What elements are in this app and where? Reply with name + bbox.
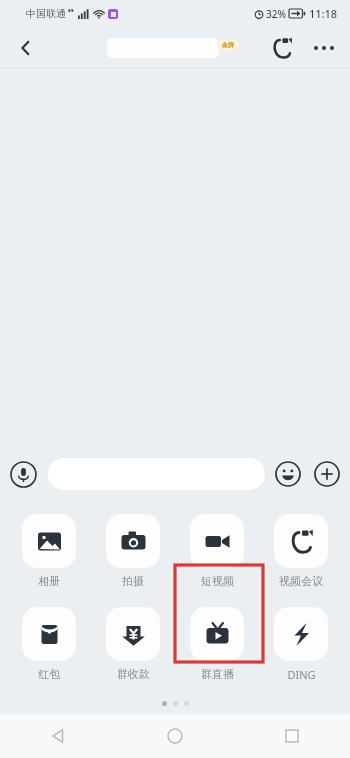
button[interactable]: Recents (233, 714, 350, 758)
staticText: 群收款 (117, 667, 150, 681)
staticText: 32% (266, 7, 286, 21)
button[interactable] (48, 458, 265, 490)
staticText: 11:18 (309, 6, 338, 21)
button[interactable]: Home (116, 714, 233, 758)
button[interactable]: Back (0, 714, 116, 758)
button[interactable]: 群直播 (186, 607, 248, 681)
button[interactable]: More options (306, 30, 342, 66)
staticText: 短视频 (201, 574, 234, 588)
staticText: 相册 (38, 574, 60, 588)
button[interactable]: Emoji (275, 461, 301, 487)
button[interactable]: 相册 (18, 514, 80, 588)
staticText: 红包 (38, 667, 60, 681)
staticText: DING (287, 667, 316, 682)
button[interactable]: Video call (264, 30, 300, 66)
button[interactable]: Voice message (10, 461, 37, 488)
staticText: 拍摄 (122, 574, 144, 588)
staticText: 金牌 (222, 41, 234, 49)
button[interactable]: 群收款 (102, 607, 164, 681)
button[interactable]: 视频会议 (270, 514, 332, 588)
button[interactable]: 拍摄 (102, 514, 164, 588)
staticText: 群直播 (201, 667, 234, 681)
button[interactable]: Back (8, 30, 44, 66)
button[interactable]: More (314, 461, 340, 487)
button[interactable]: DING (270, 607, 332, 682)
staticText: 中国联通 (26, 7, 66, 20)
button[interactable]: 红包 (18, 607, 80, 681)
staticText: 视频会议 (279, 574, 323, 588)
button[interactable]: 短视频 (186, 514, 248, 588)
